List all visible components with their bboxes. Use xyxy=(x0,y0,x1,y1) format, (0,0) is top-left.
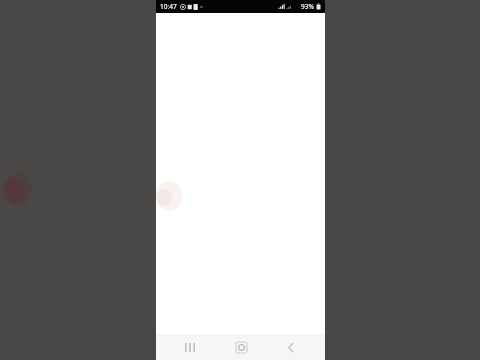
staticText: 93% xyxy=(301,2,314,11)
button[interactable]: Back xyxy=(274,334,308,360)
staticText: 10:47 xyxy=(160,2,177,11)
button[interactable]: Home xyxy=(224,334,258,360)
button[interactable]: Recent apps xyxy=(173,334,207,360)
